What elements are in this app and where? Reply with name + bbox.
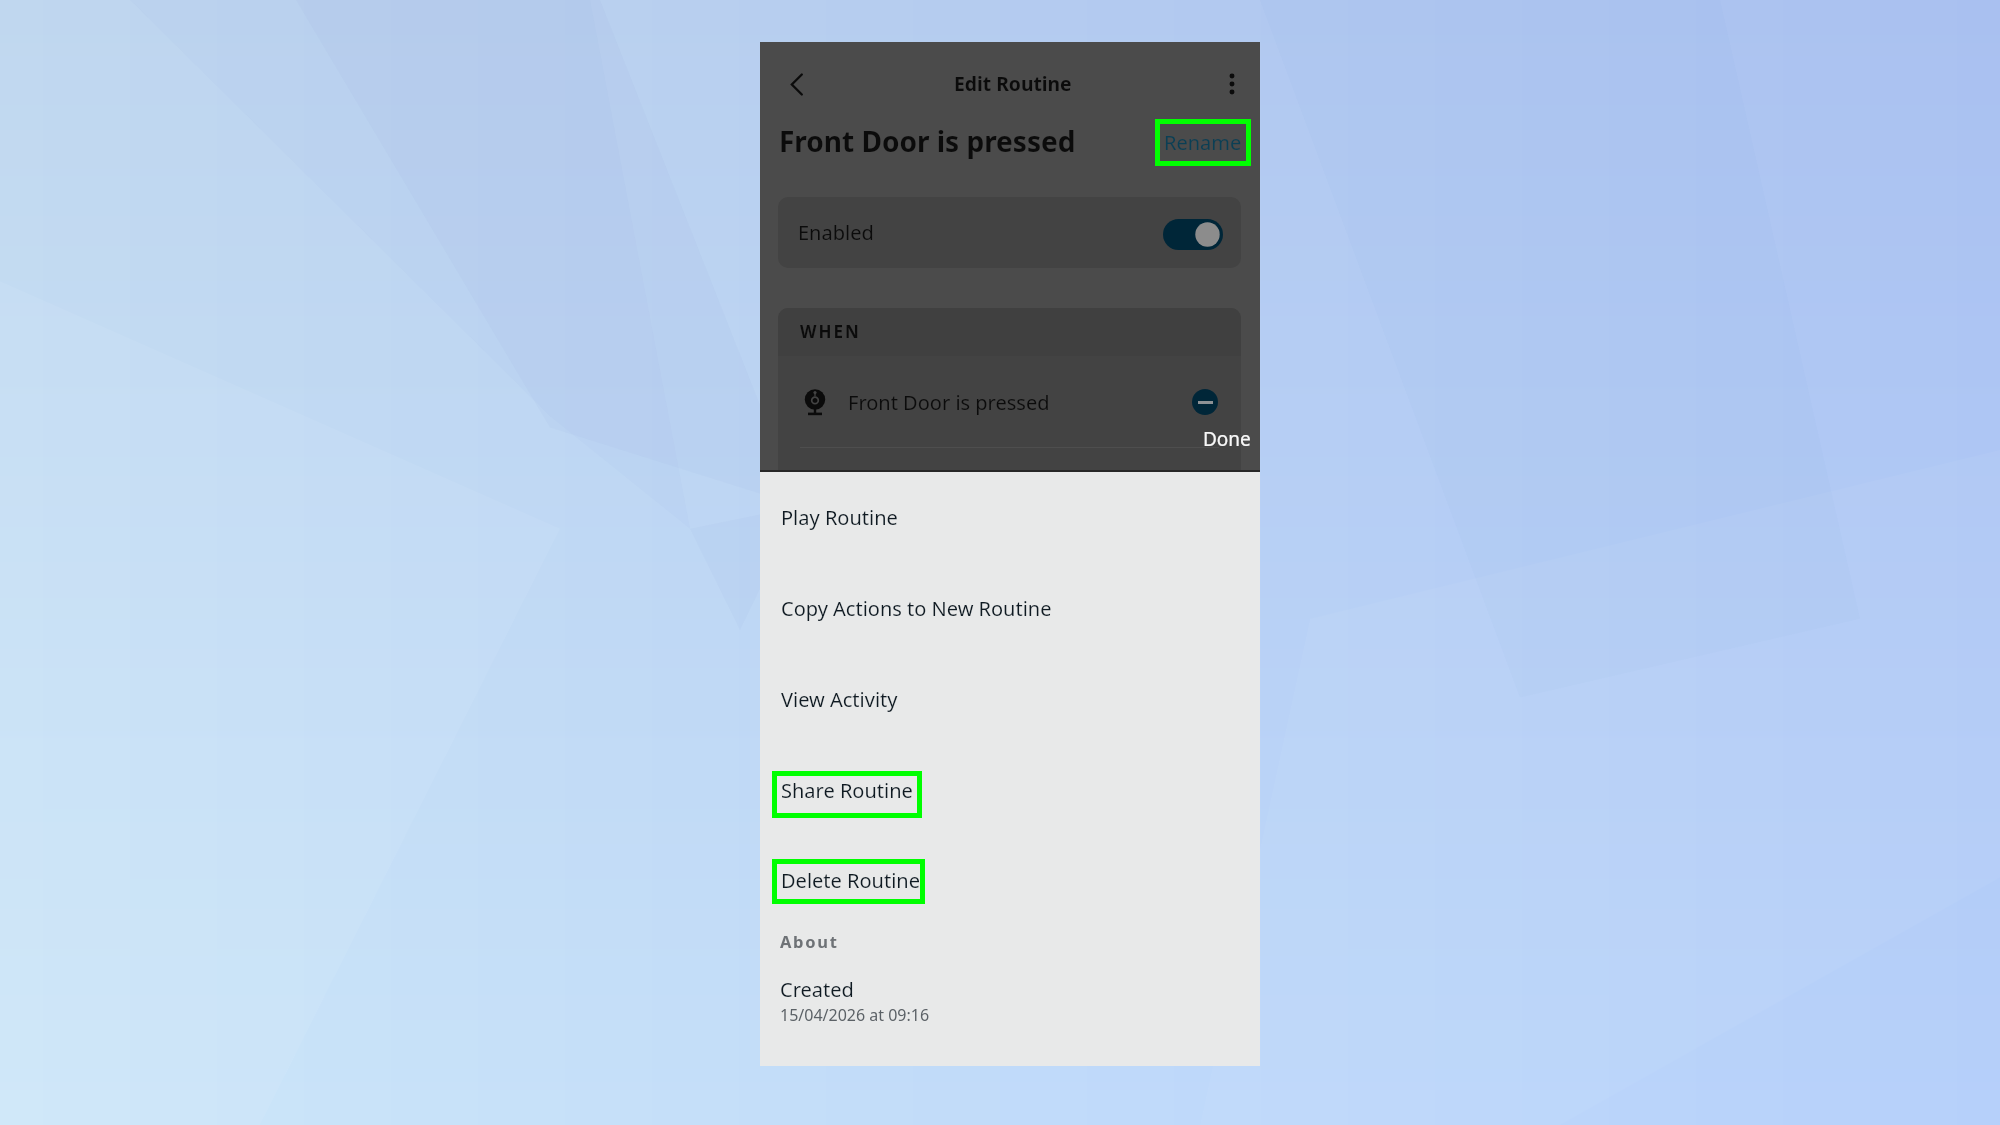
staticText: Edit Routine xyxy=(954,70,1072,96)
button[interactable]: Back xyxy=(773,60,821,108)
staticText: 15/04/2026 at 09:16 xyxy=(780,1004,930,1026)
staticText: View Activity xyxy=(781,686,898,713)
button[interactable]: More options xyxy=(1208,60,1256,108)
button[interactable]: View Activity xyxy=(760,657,1260,748)
staticText: Share Routine xyxy=(781,777,913,804)
button[interactable]: Remove trigger xyxy=(1192,389,1218,415)
staticText: Enabled xyxy=(798,219,874,246)
staticText: Front Door is pressed xyxy=(848,389,1050,416)
staticText: Done xyxy=(1203,426,1251,452)
button[interactable]: Enabled xyxy=(778,197,1241,268)
staticText: Delete Routine xyxy=(781,867,920,894)
staticText: Copy Actions to New Routine xyxy=(781,595,1052,622)
staticText: Rename xyxy=(1164,129,1242,156)
button[interactable]: Play Routine xyxy=(760,475,1260,566)
button[interactable]: Delete Routine xyxy=(760,839,1260,930)
staticText: WHEN xyxy=(800,320,861,343)
button[interactable]: Share Routine xyxy=(760,748,1260,839)
staticText: Front Door is pressed xyxy=(779,122,1076,160)
button[interactable]: Rename xyxy=(1155,119,1251,166)
staticText: Created xyxy=(780,976,854,1003)
staticText: About xyxy=(780,930,839,952)
staticText: Play Routine xyxy=(781,504,898,531)
button[interactable]: Copy Actions to New Routine xyxy=(760,566,1260,657)
button[interactable]: Front Door is pressed xyxy=(778,356,1241,447)
